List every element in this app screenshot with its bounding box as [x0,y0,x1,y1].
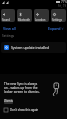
staticText: The new Sync is always on - wakes up fro… [4,82,41,94]
staticText: Sound [2,18,10,22]
staticText: Expand [48,26,61,31]
staticText: Fri, 19 [58,4,67,8]
staticText: System update installed [11,45,50,50]
staticText: 77% [61,0,67,4]
staticText: Settings [52,18,62,22]
button[interactable]: Don't show this again [4,108,39,112]
staticText: Location [35,18,46,22]
button[interactable]: Sound [1,9,15,22]
button[interactable]: Location [34,9,49,22]
button[interactable]: System update installed [1,42,66,53]
other: Illustration [51,81,61,99]
staticText: Settings [2,34,15,38]
button[interactable]: View all [2,26,17,31]
button[interactable]: Dismiss [4,99,13,104]
staticText: Dismiss [4,99,13,104]
button[interactable]: Bluetooth [17,9,32,22]
button[interactable]: Settings [51,9,66,22]
staticText: View all [3,26,16,31]
staticText: Don't show this again [10,108,39,112]
button[interactable]: Expand [47,26,65,31]
staticText: Bluetooth [18,18,31,22]
